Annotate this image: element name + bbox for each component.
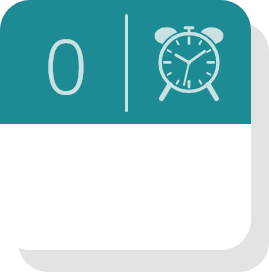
button[interactable]: 02: [0, 0, 251, 250]
staticText: 02: [27, 13, 105, 109]
button[interactable]: Alarm clock: [155, 18, 223, 106]
